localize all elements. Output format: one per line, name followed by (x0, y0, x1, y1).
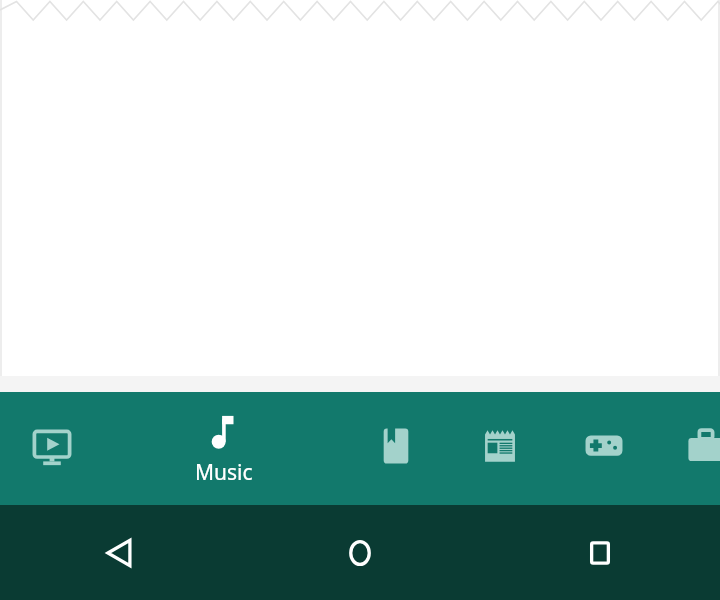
button[interactable]: Games (561, 392, 647, 505)
button[interactable]: Home (240, 505, 480, 600)
button[interactable]: Back (0, 505, 240, 600)
staticText: Music (195, 458, 253, 487)
button[interactable]: Newsstand (457, 392, 543, 505)
button[interactable]: Music (159, 392, 289, 505)
button[interactable]: Work (663, 392, 720, 505)
button[interactable]: Books (353, 392, 439, 505)
button[interactable]: Movies & TV (9, 392, 95, 505)
button[interactable]: Recents (480, 505, 720, 600)
